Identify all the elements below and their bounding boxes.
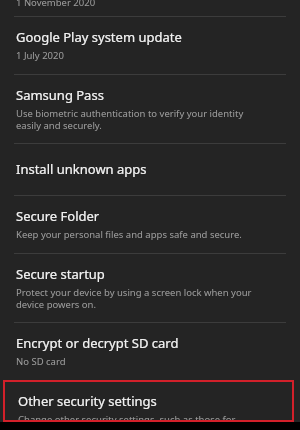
staticText: Google Play system update (16, 28, 182, 46)
staticText: Protect your device by using a screen lo… (16, 286, 252, 311)
staticText: Encrypt or decrypt SD card (16, 334, 179, 352)
staticText: 1 November 2020 (16, 0, 96, 9)
staticText: Change other security settings, such as … (18, 413, 236, 420)
staticText: Samsung Pass (16, 86, 104, 104)
staticText: Install unknown apps (16, 160, 147, 178)
button[interactable]: 1 November 2020 (0, 0, 300, 16)
button[interactable]: Secure startup (0, 254, 300, 322)
staticText: Secure startup (16, 265, 105, 283)
staticText: Other security settings (18, 392, 157, 410)
staticText: Use biometric authentication to verify y… (16, 107, 244, 132)
button[interactable]: Install unknown apps (0, 144, 300, 195)
staticText: Keep your personal files and apps safe a… (16, 228, 242, 241)
button[interactable]: Secure Folder (0, 196, 300, 253)
staticText: No SD card (16, 355, 66, 368)
button[interactable]: Google Play system update (0, 17, 300, 74)
button[interactable]: Other security settings (5, 382, 292, 420)
button[interactable]: Encrypt or decrypt SD card (0, 323, 300, 380)
staticText: Secure Folder (16, 207, 100, 225)
staticText: 1 July 2020 (16, 49, 64, 62)
button[interactable]: Samsung Pass (0, 75, 300, 143)
